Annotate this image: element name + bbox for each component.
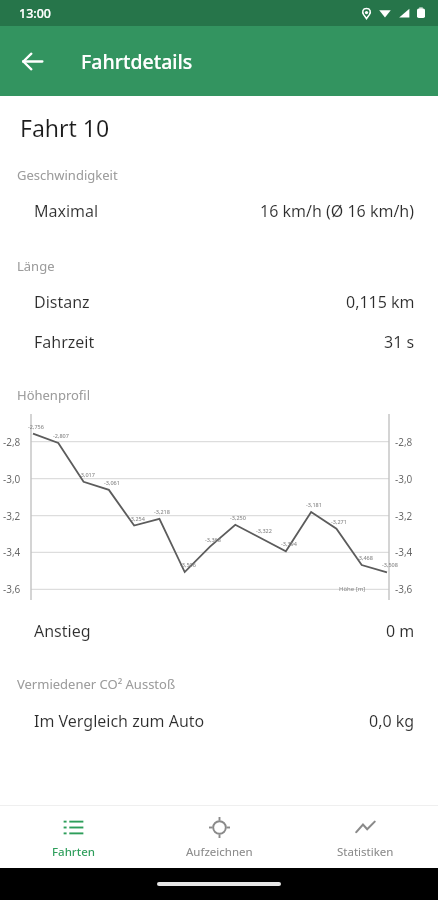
- button[interactable]: Fahrten: [0, 806, 146, 868]
- button[interactable]: Statistiken: [292, 806, 438, 868]
- staticText: -3,254: [129, 515, 145, 522]
- staticText: -3,506: [180, 561, 196, 568]
- staticText: Anstieg: [34, 620, 91, 642]
- staticText: -3,368: [205, 536, 221, 543]
- staticText: -2,8: [395, 435, 413, 449]
- staticText: -3,6: [3, 582, 21, 596]
- staticText: Distanz: [34, 291, 90, 313]
- staticText: -2,807: [53, 432, 69, 439]
- staticText: -3,061: [104, 479, 120, 486]
- staticText: Länge: [17, 257, 438, 275]
- button[interactable]: Back: [9, 38, 55, 84]
- button[interactable]: Distanz: [0, 291, 438, 313]
- button[interactable]: Im Vergleich zum Auto: [0, 710, 438, 732]
- staticText: -3,017: [79, 471, 95, 478]
- staticText: -3,250: [230, 514, 246, 521]
- staticText: Höhenprofil: [17, 386, 438, 404]
- staticText: -3,508: [382, 561, 398, 568]
- button[interactable]: Maximal: [0, 200, 438, 222]
- staticText: 0,0 kg: [369, 710, 415, 732]
- staticText: -3,4: [3, 545, 21, 559]
- staticText: -2,8: [3, 435, 21, 449]
- staticText: -3,218: [154, 508, 170, 515]
- staticText: Fahrtdetails: [81, 48, 193, 75]
- staticText: Aufzeichnen: [186, 844, 253, 860]
- staticText: -3,322: [256, 527, 272, 534]
- staticText: Geschwindigkeit: [17, 166, 438, 184]
- staticText: Fahrzeit: [34, 331, 95, 353]
- staticText: -2,756: [28, 423, 44, 430]
- staticText: Vermiedener CO² Ausstoß: [17, 675, 438, 693]
- button[interactable]: Anstieg: [0, 620, 438, 642]
- button[interactable]: Aufzeichnen: [146, 806, 292, 868]
- staticText: -3,6: [395, 582, 413, 596]
- staticText: Maximal: [34, 200, 99, 222]
- staticText: -3,271: [331, 518, 347, 525]
- staticText: -3,0: [395, 472, 413, 486]
- staticText: -3,394: [281, 540, 297, 547]
- staticText: 16 km/h (Ø 16 km/h): [260, 200, 415, 222]
- staticText: Statistiken: [337, 844, 394, 860]
- staticText: Im Vergleich zum Auto: [34, 710, 205, 732]
- staticText: 0 m: [386, 620, 415, 642]
- staticText: -3,2: [395, 509, 413, 523]
- staticText: Fahrten: [52, 844, 95, 860]
- staticText: -3,0: [3, 472, 21, 486]
- staticText: 13:00: [19, 5, 52, 22]
- button[interactable]: Fahrzeit: [0, 331, 438, 353]
- staticText: -3,4: [395, 545, 413, 559]
- staticText: -3,181: [306, 501, 322, 508]
- staticText: 0,115 km: [346, 291, 415, 313]
- staticText: -3,468: [357, 554, 373, 561]
- staticText: Höhe [m]: [339, 585, 366, 593]
- staticText: -3,2: [3, 509, 21, 523]
- staticText: Fahrt 10: [20, 112, 110, 143]
- staticText: 31 s: [384, 331, 415, 353]
